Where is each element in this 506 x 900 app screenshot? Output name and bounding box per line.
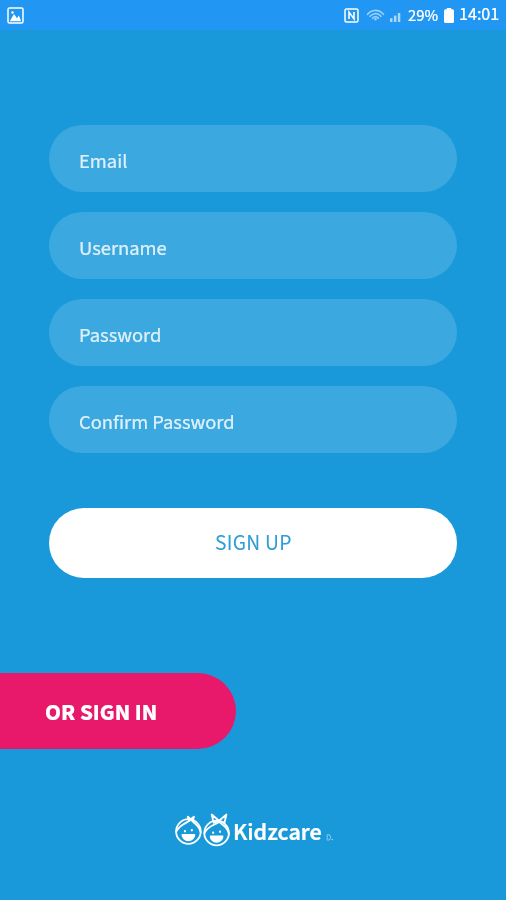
- staticText: Kidzcare: [233, 815, 322, 849]
- other: Screenshot captured: [8, 8, 23, 23]
- button[interactable]: Confirm Password: [49, 386, 457, 453]
- button[interactable]: SIGN UP: [49, 508, 457, 578]
- staticText: SIGN UP: [215, 528, 292, 559]
- button[interactable]: Password: [49, 299, 457, 366]
- staticText: OR SIGN IN: [45, 696, 158, 729]
- staticText: 14:01: [459, 2, 500, 28]
- staticText: Confirm Password: [79, 408, 235, 437]
- staticText: Email: [79, 147, 128, 176]
- staticText: Password: [79, 321, 162, 350]
- staticText: Username: [79, 234, 167, 263]
- button[interactable]: Username: [49, 212, 457, 279]
- button[interactable]: OR SIGN IN: [0, 673, 236, 749]
- staticText: 29%: [408, 4, 438, 27]
- button[interactable]: Email: [49, 125, 457, 192]
